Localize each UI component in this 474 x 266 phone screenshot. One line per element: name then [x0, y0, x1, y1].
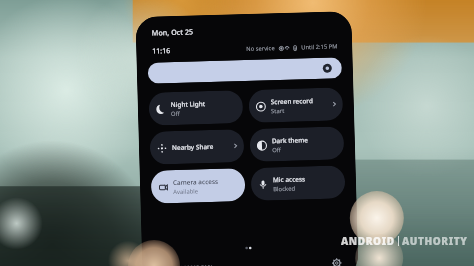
staticText: Off: [171, 110, 180, 118]
staticText: Until 2:15 PM: [301, 42, 338, 51]
staticText: 12 (SPIA.210812.015): [157, 263, 212, 266]
staticText: Off: [272, 146, 281, 154]
button[interactable]: Screen record: [248, 87, 343, 123]
staticText: Mon, Oct 25: [152, 26, 194, 38]
button[interactable]: Settings: [330, 256, 343, 266]
staticText: Screen record: [271, 96, 314, 106]
staticText: Available: [173, 187, 198, 196]
button[interactable]: Camera access: [151, 168, 245, 204]
staticText: 11:16: [152, 46, 170, 57]
staticText: Camera access: [173, 177, 219, 187]
button[interactable]: Mic access: [251, 165, 345, 201]
staticText: Nearby Share: [172, 142, 214, 152]
staticText: Blocked: [273, 185, 295, 193]
button[interactable]: Night Light: [148, 90, 243, 126]
staticText: Mic access: [273, 174, 306, 184]
staticText: No service: [246, 44, 275, 53]
staticText: Dark theme: [272, 135, 309, 145]
staticText: ANDROID: [341, 234, 395, 248]
staticText: AUTHORITY: [402, 234, 468, 248]
button[interactable]: Nearby Share: [149, 129, 244, 165]
staticText: Start: [271, 107, 285, 115]
button[interactable]: Dark theme: [249, 126, 344, 162]
button[interactable]: Brightness: [148, 57, 342, 84]
staticText: Night Light: [171, 99, 206, 109]
